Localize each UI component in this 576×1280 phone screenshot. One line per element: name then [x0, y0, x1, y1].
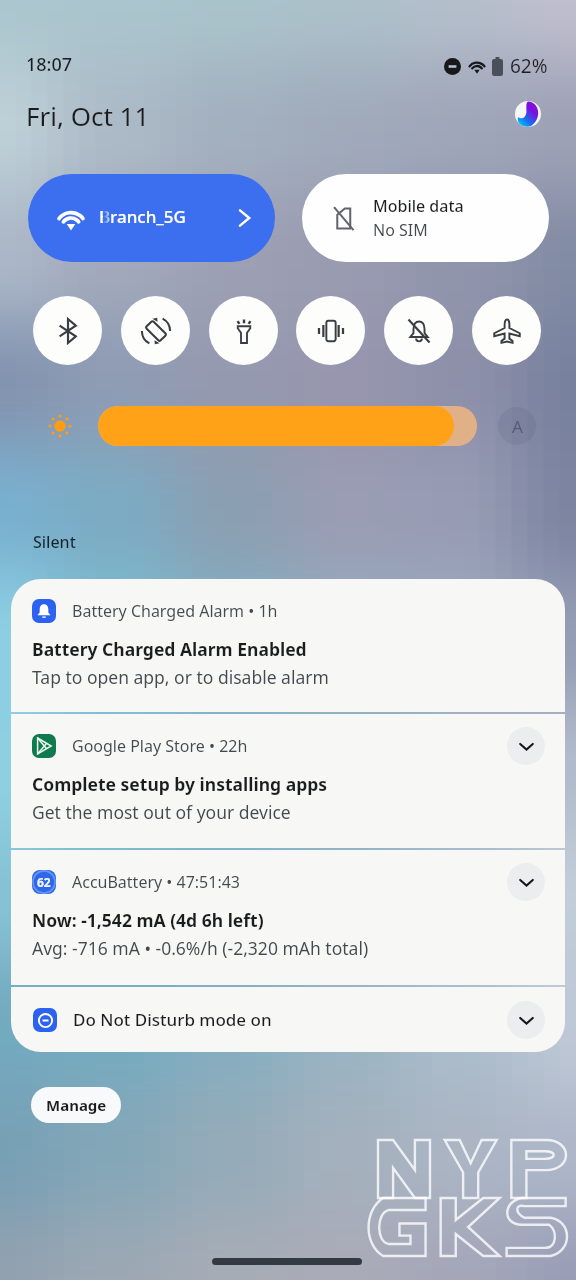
staticText: AccuBattery • 47:51:43: [72, 871, 507, 893]
button[interactable]: Battery Charged Alarm • 1h: [11, 579, 565, 712]
button[interactable]: Auto rotate: [121, 296, 190, 365]
staticText: No SIM: [373, 219, 428, 241]
staticText: Complete setup by installing apps: [32, 772, 328, 796]
staticText: Branch_5G: [99, 205, 186, 228]
staticText: Do Not Disturb mode on: [73, 1008, 507, 1031]
button[interactable]: Manage: [31, 1087, 121, 1123]
button[interactable]: Expand: [507, 863, 545, 901]
button[interactable]: Airplane mode: [472, 296, 541, 365]
button[interactable]: Auto brightness: [498, 407, 536, 445]
staticText: Mobile data: [373, 195, 464, 217]
button[interactable]: Mobile data: [302, 174, 549, 262]
staticText: Get the most out of your device: [32, 800, 291, 824]
staticText: 62: [37, 874, 51, 890]
staticText: A: [512, 415, 523, 438]
button[interactable]: Profile: [515, 101, 541, 127]
staticText: Google Play Store • 22h: [72, 735, 507, 757]
staticText: Manage: [46, 1095, 107, 1115]
button[interactable]: Branch_5G: [28, 174, 275, 262]
button[interactable]: Do not disturb: [384, 296, 453, 365]
button[interactable]: Brightness: [98, 406, 477, 446]
staticText: 62%: [510, 53, 548, 79]
button[interactable]: Bluetooth: [33, 296, 102, 365]
staticText: 18:07: [26, 52, 73, 77]
button[interactable]: Vibrate: [296, 296, 365, 365]
staticText: Fri, Oct 11: [26, 98, 150, 133]
button[interactable]: Do Not Disturb mode on: [11, 987, 565, 1052]
button[interactable]: Expand: [507, 727, 545, 765]
staticText: Battery Charged Alarm Enabled: [32, 637, 307, 661]
button[interactable]: Flashlight: [209, 296, 278, 365]
staticText: Tap to open app, or to disable alarm: [32, 665, 329, 689]
button[interactable]: 62: [11, 850, 565, 985]
staticText: Silent: [33, 531, 76, 553]
button[interactable]: Expand: [507, 1001, 545, 1039]
staticText: Battery Charged Alarm • 1h: [72, 600, 545, 622]
staticText: Avg: -716 mA • -0.6%/h (-2,320 mAh total…: [32, 936, 369, 960]
staticText: Now: -1,542 mA (4d 6h left): [32, 908, 264, 932]
button[interactable]: Google Play Store • 22h: [11, 714, 565, 848]
